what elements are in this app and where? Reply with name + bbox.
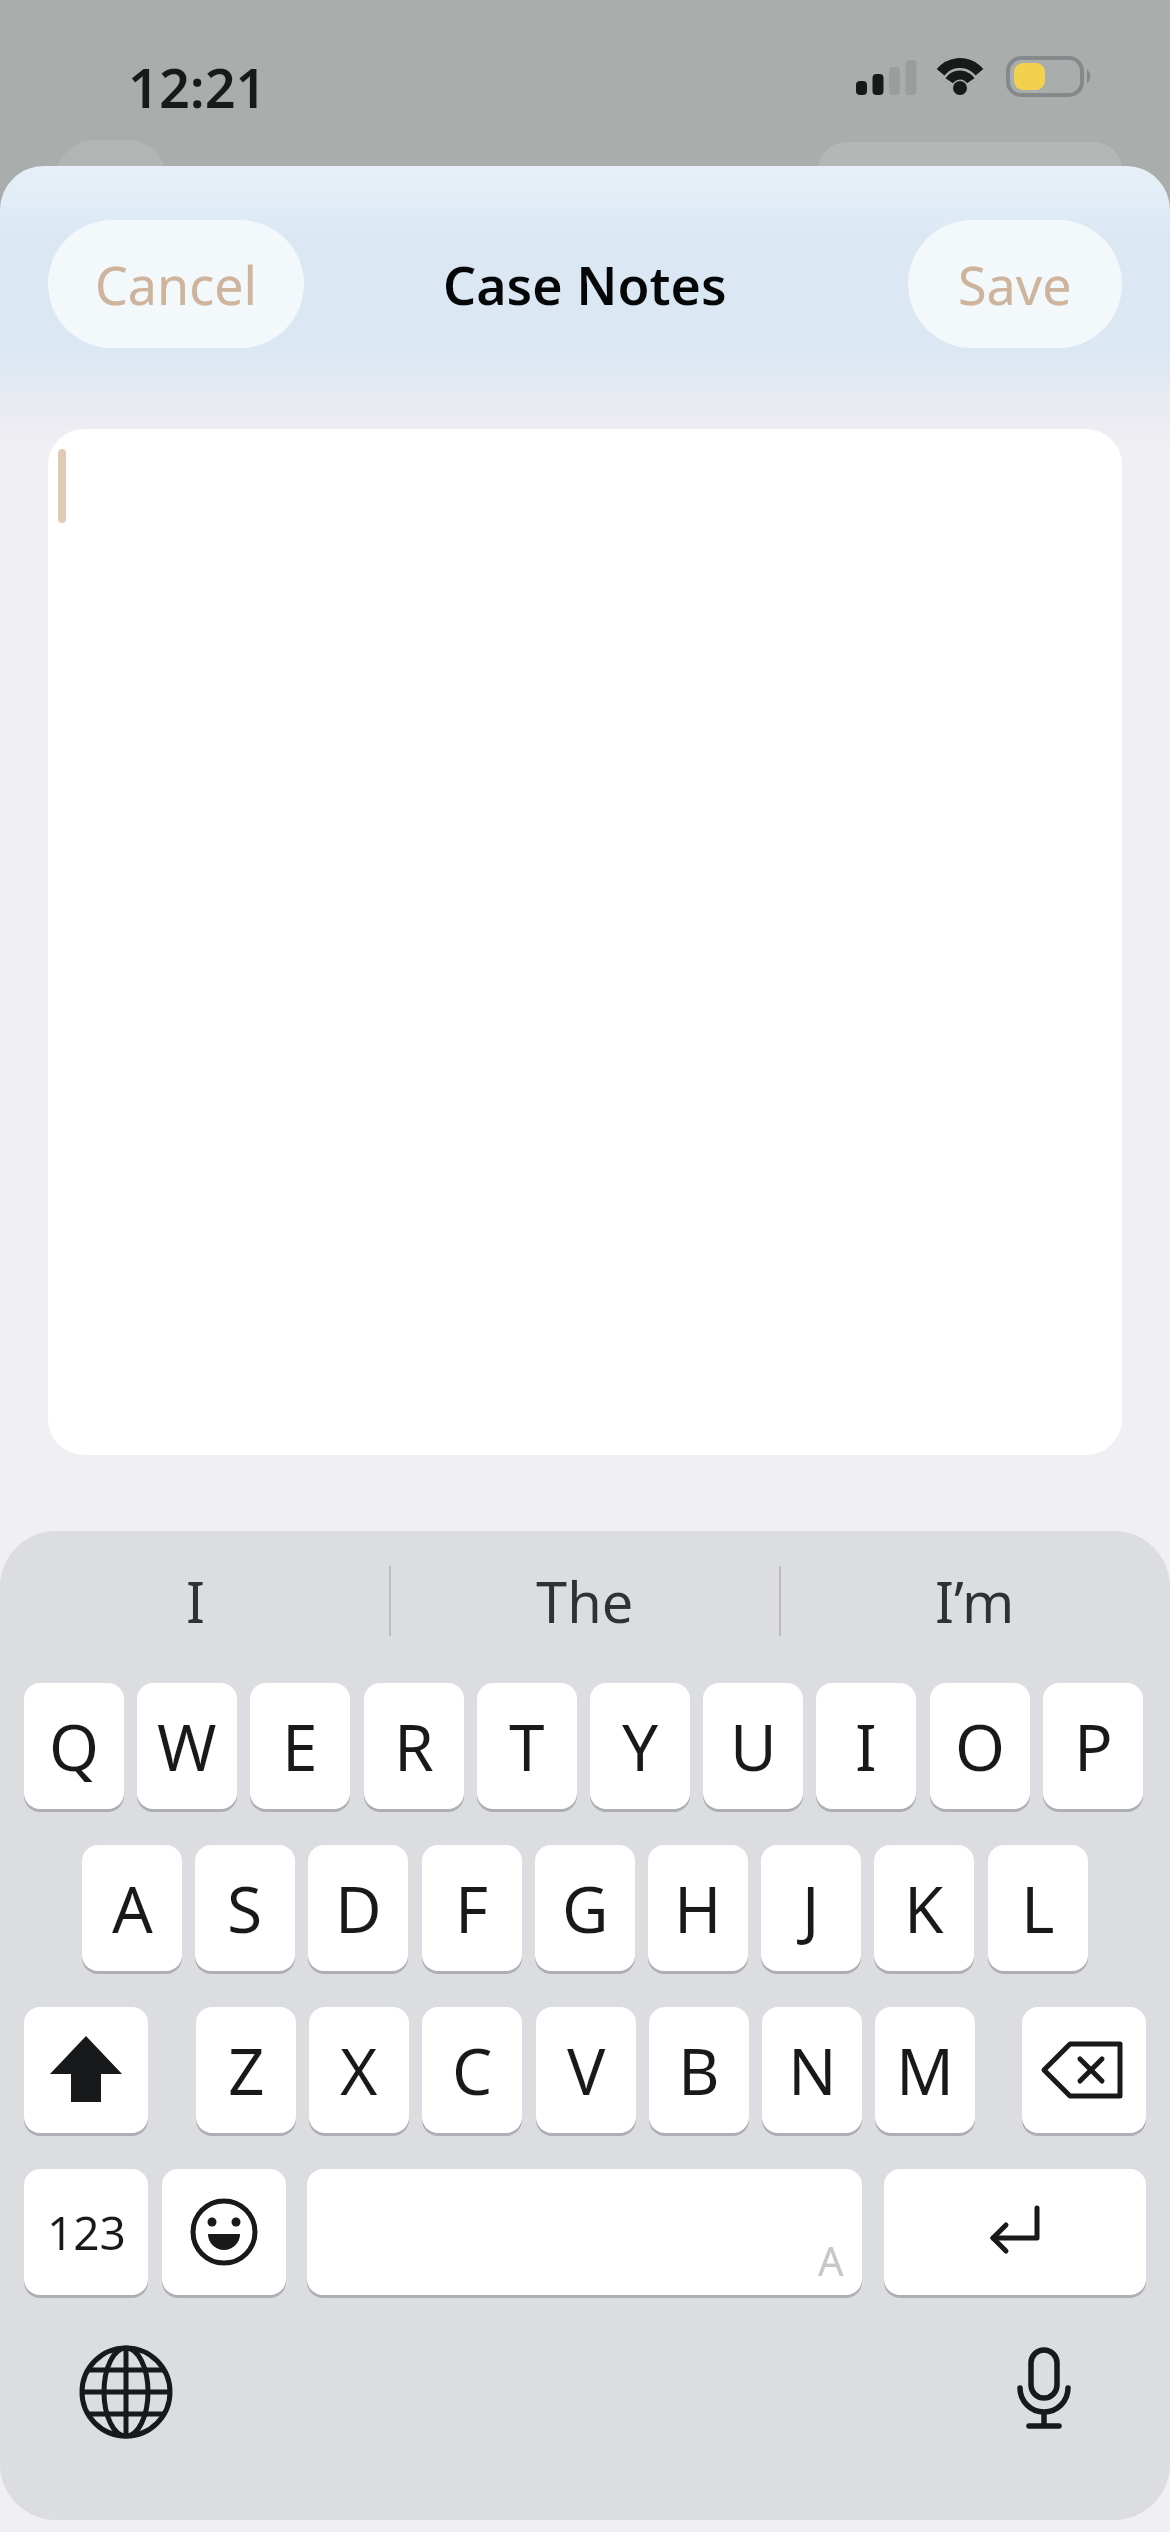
- button[interactable]: J: [761, 1845, 861, 1971]
- staticText: H: [674, 1865, 722, 1952]
- staticText: V: [567, 2027, 606, 2114]
- staticText: A: [112, 1865, 153, 1952]
- staticText: U: [730, 1703, 777, 1790]
- staticText: N: [788, 2027, 837, 2114]
- button[interactable]: R: [364, 1683, 464, 1809]
- button[interactable]: P: [1043, 1683, 1143, 1809]
- staticText: A: [818, 2233, 844, 2287]
- staticText: P: [1074, 1703, 1113, 1790]
- button[interactable]: Cancel: [48, 220, 304, 348]
- button[interactable]: [162, 2169, 286, 2295]
- staticText: Case Notes: [443, 249, 727, 320]
- button[interactable]: B: [649, 2007, 749, 2133]
- staticText: D: [335, 1865, 382, 1952]
- staticText: T: [509, 1703, 545, 1790]
- button[interactable]: [996, 2344, 1092, 2440]
- button[interactable]: [78, 2344, 174, 2440]
- button[interactable]: I’m: [780, 1558, 1170, 1644]
- staticText: M: [896, 2027, 955, 2114]
- button[interactable]: A: [82, 1845, 182, 1971]
- button[interactable]: H: [648, 1845, 748, 1971]
- staticText: K: [904, 1865, 944, 1952]
- button[interactable]: N: [762, 2007, 862, 2133]
- staticText: I: [186, 1563, 205, 1639]
- staticText: J: [802, 1865, 820, 1952]
- button[interactable]: Save: [908, 220, 1122, 348]
- button[interactable]: I: [0, 1558, 390, 1644]
- staticText: Y: [622, 1703, 659, 1790]
- button[interactable]: W: [137, 1683, 237, 1809]
- staticText: C: [452, 2027, 493, 2114]
- button[interactable]: [24, 2007, 148, 2133]
- button[interactable]: K: [874, 1845, 974, 1971]
- staticText: R: [394, 1703, 434, 1790]
- staticText: Z: [228, 2027, 265, 2114]
- button[interactable]: Z: [196, 2007, 296, 2133]
- button[interactable]: E: [250, 1683, 350, 1809]
- staticText: L: [1021, 1865, 1055, 1952]
- button[interactable]: [1022, 2007, 1146, 2133]
- button[interactable]: T: [477, 1683, 577, 1809]
- button[interactable]: M: [875, 2007, 975, 2133]
- staticText: B: [678, 2027, 720, 2114]
- staticText: Save: [958, 249, 1072, 320]
- button[interactable]: O: [930, 1683, 1030, 1809]
- button[interactable]: [884, 2169, 1146, 2295]
- staticText: E: [282, 1703, 318, 1790]
- staticText: 12:21: [128, 50, 267, 124]
- button[interactable]: X: [309, 2007, 409, 2133]
- staticText: Q: [49, 1703, 99, 1790]
- staticText: Cancel: [95, 249, 257, 320]
- button[interactable]: C: [422, 2007, 522, 2133]
- staticText: X: [340, 2027, 378, 2114]
- staticText: O: [955, 1703, 1005, 1790]
- button[interactable]: 123: [24, 2169, 148, 2295]
- button[interactable]: Q: [24, 1683, 124, 1809]
- staticText: G: [562, 1865, 609, 1952]
- button[interactable]: I: [816, 1683, 916, 1809]
- button[interactable]: The: [390, 1558, 780, 1644]
- button[interactable]: G: [535, 1845, 635, 1971]
- staticText: I: [855, 1703, 877, 1790]
- button[interactable]: D: [308, 1845, 408, 1971]
- staticText: S: [227, 1865, 263, 1952]
- button[interactable]: F: [422, 1845, 522, 1971]
- button[interactable]: Y: [590, 1683, 690, 1809]
- staticText: I’m: [935, 1563, 1015, 1639]
- button[interactable]: U: [703, 1683, 803, 1809]
- button[interactable]: A: [307, 2169, 862, 2295]
- staticText: The: [536, 1563, 634, 1639]
- staticText: W: [157, 1703, 217, 1790]
- button[interactable]: V: [536, 2007, 636, 2133]
- staticText: F: [455, 1865, 489, 1952]
- button[interactable]: L: [988, 1845, 1088, 1971]
- staticText: 123: [47, 2201, 126, 2264]
- button[interactable]: S: [195, 1845, 295, 1971]
